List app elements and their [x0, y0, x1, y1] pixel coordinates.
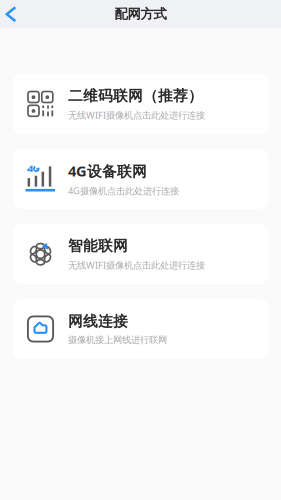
staticText: 智能联网 [68, 237, 128, 255]
staticText: 4G摄像机点击此处进行连接 [68, 185, 179, 197]
staticText: 配网方式 [114, 6, 166, 22]
button[interactable]: Back [0, 0, 22, 28]
button[interactable]: 二维码联网（推荐） [13, 74, 268, 134]
staticText: 无线WIFI摄像机点击此处进行连接 [68, 109, 205, 121]
staticText: 网线连接 [68, 312, 128, 330]
staticText: 二维码联网（推荐） [68, 87, 203, 105]
staticText: 摄像机接上网线进行联网 [68, 334, 167, 346]
staticText: 4G设备联网 [68, 161, 147, 181]
button[interactable]: 网线连接 [13, 299, 268, 359]
button[interactable]: 4G设备联网 [13, 149, 268, 209]
button[interactable]: 智能联网 [13, 224, 268, 284]
staticText: 无线WIFI摄像机点击此处进行连接 [68, 259, 205, 271]
